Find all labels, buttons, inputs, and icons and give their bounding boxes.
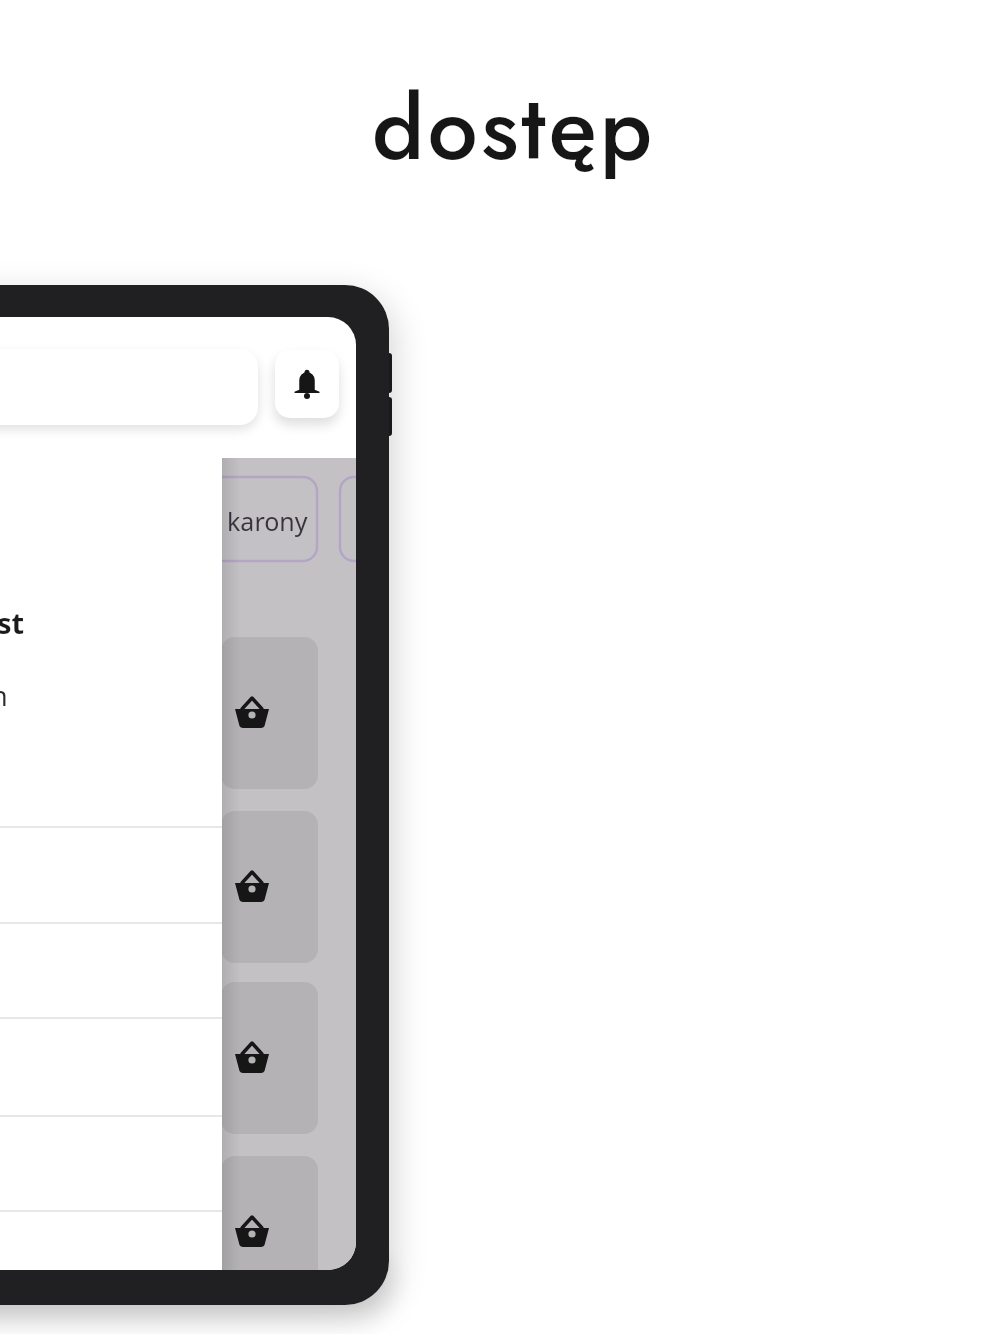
button[interactable] — [275, 350, 339, 418]
staticText: karony — [227, 504, 308, 538]
staticText: st — [0, 603, 25, 642]
button[interactable] — [222, 637, 318, 789]
staticText: dostęp — [372, 64, 656, 193]
button[interactable] — [222, 1156, 318, 1270]
button[interactable] — [222, 811, 318, 963]
staticText: n — [0, 677, 8, 714]
button[interactable] — [222, 982, 318, 1134]
button[interactable] — [222, 477, 356, 561]
